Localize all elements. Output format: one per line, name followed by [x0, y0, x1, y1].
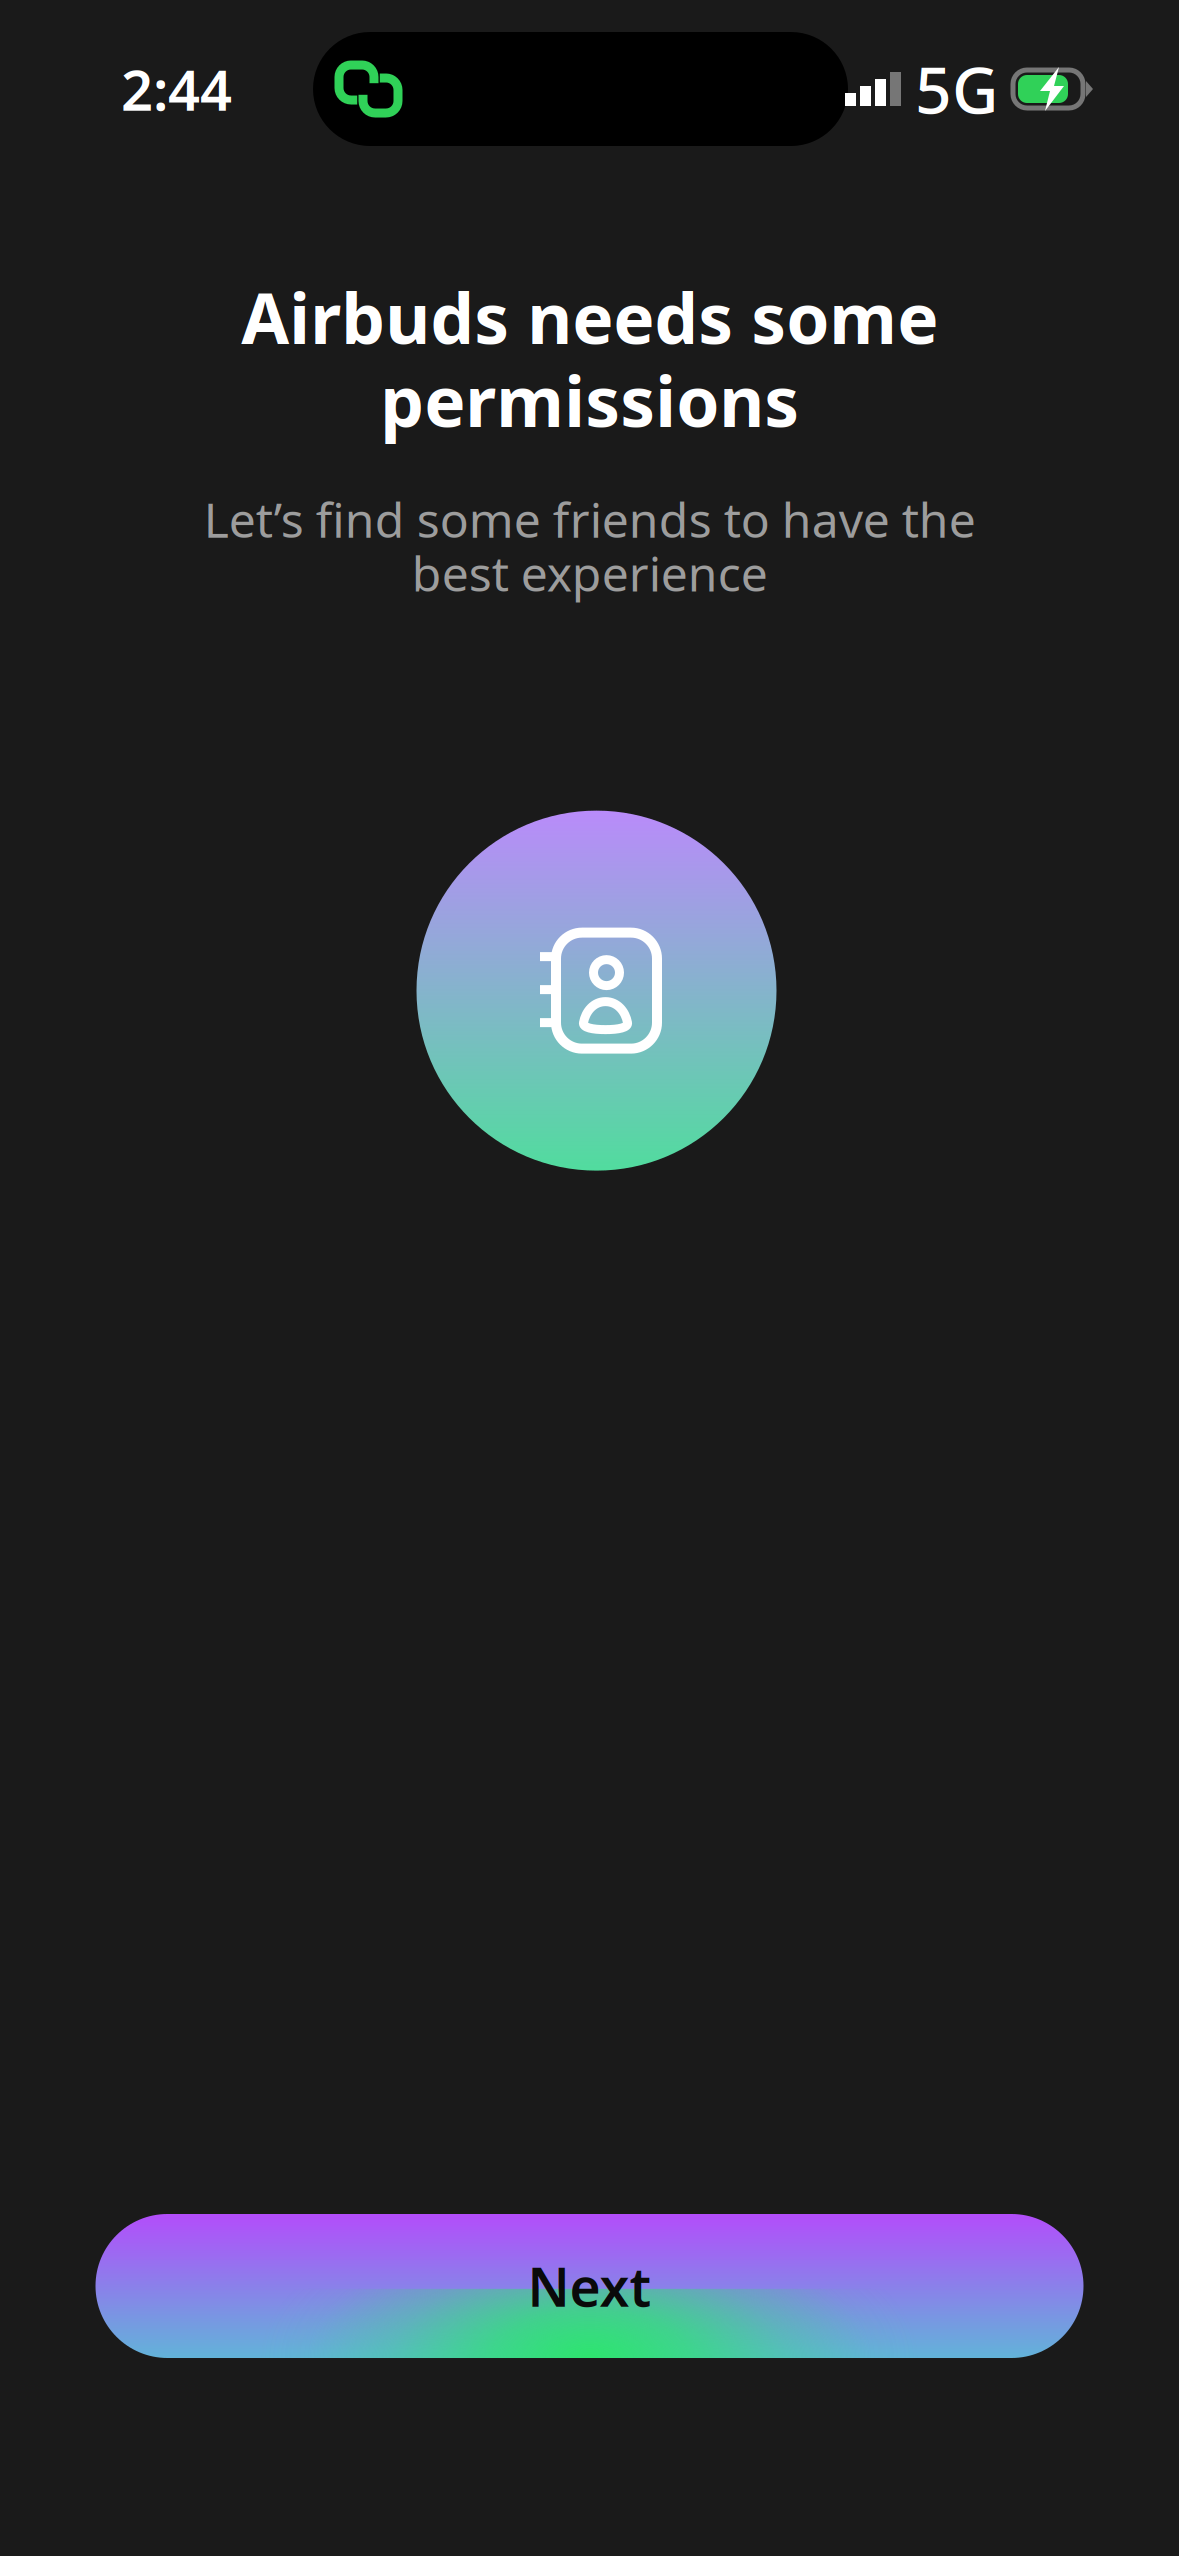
staticText: Next	[527, 2251, 651, 2321]
staticText: Let’s find some friends to have the best…	[203, 487, 975, 605]
staticText: 2:44	[121, 52, 232, 126]
staticText: 5G	[915, 46, 999, 131]
staticText: Airbuds needs some permissions	[241, 271, 938, 446]
button[interactable]: Next	[95, 2214, 1083, 2358]
